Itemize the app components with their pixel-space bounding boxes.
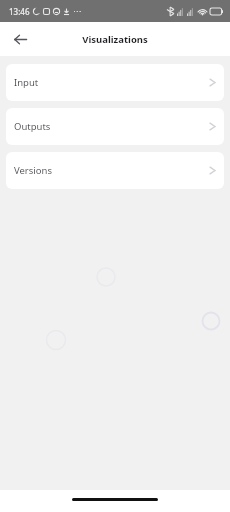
staticText: Outputs bbox=[14, 120, 51, 133]
staticText: Visualizations bbox=[82, 33, 148, 46]
staticText: 13:46 bbox=[9, 6, 30, 17]
button[interactable]: Versions bbox=[6, 152, 224, 189]
button[interactable]: Outputs bbox=[6, 108, 224, 145]
staticText: Input bbox=[14, 76, 39, 89]
staticText: ⋯ bbox=[73, 7, 81, 16]
button[interactable]: Back bbox=[8, 27, 32, 51]
button[interactable]: Input bbox=[6, 64, 224, 101]
staticText: Versions bbox=[14, 164, 52, 177]
